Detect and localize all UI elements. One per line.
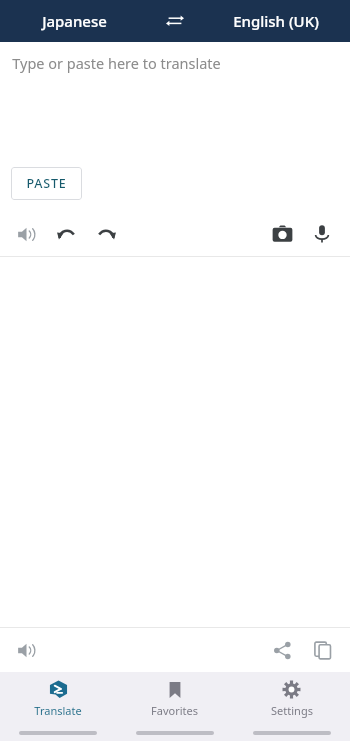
staticText: English (UK): [233, 11, 319, 31]
button[interactable]: Listen to translation: [6, 630, 46, 670]
button[interactable]: Copy: [302, 630, 342, 670]
button[interactable]: Redo: [86, 214, 126, 254]
staticText: Type or paste here to translate: [12, 53, 221, 73]
button[interactable]: Japanese: [0, 0, 149, 42]
staticText: Settings: [271, 703, 313, 718]
button[interactable]: Translate: [0, 672, 116, 724]
button[interactable]: Camera input: [262, 214, 302, 254]
button[interactable]: PASTE: [11, 167, 82, 200]
staticText: PASTE: [26, 175, 67, 192]
button[interactable]: Undo: [46, 214, 86, 254]
button[interactable]: Swap languages: [149, 0, 201, 42]
button[interactable]: Share: [262, 630, 302, 670]
staticText: Translate: [34, 703, 82, 718]
button[interactable]: Listen: [6, 214, 46, 254]
staticText: Favorites: [151, 703, 198, 718]
button[interactable]: Favorites: [116, 672, 233, 724]
button[interactable]: Settings: [233, 672, 350, 724]
button[interactable]: English (UK): [201, 0, 350, 42]
button[interactable]: Voice input: [302, 214, 342, 254]
staticText: Japanese: [42, 11, 107, 31]
